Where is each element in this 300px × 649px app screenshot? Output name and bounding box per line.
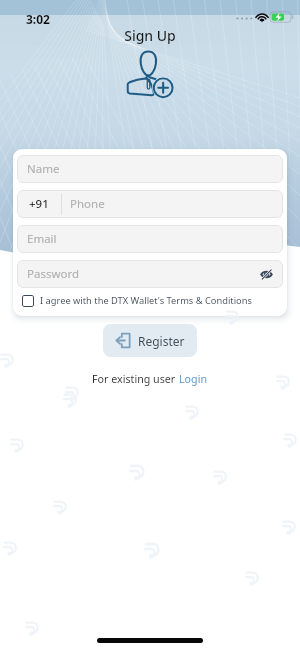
staticText: Register — [138, 333, 185, 349]
button[interactable]: Name — [17, 155, 283, 183]
button[interactable]: +91 — [17, 190, 283, 218]
button[interactable]: Show password — [257, 265, 275, 283]
staticText: Email — [27, 231, 57, 247]
button[interactable]: Register — [103, 324, 197, 357]
staticText: Sign Up — [0, 26, 300, 45]
staticText: +91 — [29, 196, 49, 212]
button[interactable]: I agree with the DTX Wallet's Terms & Co… — [17, 294, 283, 310]
button[interactable]: Login — [179, 372, 208, 387]
staticText: For existing user — [92, 372, 179, 387]
button[interactable]: Email — [17, 225, 283, 253]
button[interactable]: Password — [17, 260, 283, 288]
staticText: Login — [179, 372, 208, 387]
staticText: Name — [27, 161, 60, 177]
staticText: Password — [27, 266, 80, 282]
staticText: 3:02 — [26, 11, 50, 27]
staticText: I agree with the DTX Wallet's Terms & Co… — [40, 294, 252, 307]
staticText: Phone — [70, 196, 105, 212]
